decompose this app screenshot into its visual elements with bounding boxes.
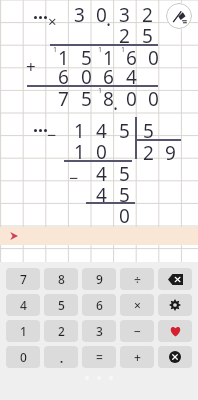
button[interactable]: Settings [158,294,192,316]
button[interactable]: 5 [44,294,78,316]
staticText: 1 [121,45,126,55]
button[interactable]: 3 [82,320,116,342]
staticText: 5 [119,161,130,184]
staticText: 5 [142,23,153,46]
button[interactable]: 4 [6,294,40,316]
staticText: 3 [119,2,130,25]
button[interactable]: . [44,346,78,368]
staticText: 7 [20,271,27,287]
button[interactable]: 8 [44,268,78,290]
button[interactable]: ÷ [120,268,154,290]
button[interactable]: 9 [82,268,116,290]
button[interactable]: More options [28,9,52,25]
staticText: 0 [96,139,107,162]
button[interactable]: 2 [44,320,78,342]
staticText: 6 [96,297,103,313]
staticText: 3 [74,2,85,25]
button[interactable]: Favorite [158,320,192,342]
staticText: × [48,11,57,31]
staticText: 4 [126,64,137,87]
button[interactable]: More options [28,122,52,138]
staticText: 0 [148,45,159,68]
staticText: 9 [96,271,103,287]
staticText: 1 [53,45,58,55]
staticText: . [59,347,64,367]
button[interactable] [0,227,198,245]
staticText: 6 [103,64,114,87]
staticText: 9 [165,140,176,163]
staticText: 6 [126,45,137,68]
staticText: 0 [119,203,130,226]
staticText: 1 [103,45,114,68]
staticText: 5 [81,45,92,68]
staticText: 8 [103,86,114,109]
staticText: 2 [143,140,154,163]
staticText: 3 [96,323,103,339]
staticText: ÷ [134,271,141,287]
staticText: 5 [143,118,154,141]
staticText: 0 [20,349,27,365]
button[interactable]: Backspace [158,268,192,290]
button[interactable]: 6 [82,294,116,316]
staticText: 2 [119,23,130,46]
staticText: 1 [74,139,85,162]
staticText: . [113,90,119,116]
staticText: 4 [20,297,27,313]
staticText: 1 [58,45,69,68]
button[interactable]: Clear all [166,3,192,29]
staticText: 4 [96,118,107,141]
staticText: 2 [58,323,65,339]
staticText: = [96,349,103,365]
staticText: 1 [98,45,103,55]
staticText: − [134,323,141,339]
staticText: 2 [142,2,153,25]
staticText: 5 [119,118,130,141]
button[interactable]: Close [158,346,192,368]
staticText: 1 [20,323,27,339]
staticText: 0 [148,86,159,109]
staticText: − [47,124,57,146]
staticText: 1 [74,118,85,141]
button[interactable]: 1 [6,320,40,342]
staticText: 1 [98,86,103,96]
staticText: 5 [81,86,92,109]
staticText: 6 [58,64,69,87]
button[interactable]: × [120,294,154,316]
staticText: + [134,349,141,365]
staticText: 5 [58,297,65,313]
staticText: 5 [119,182,130,205]
button[interactable]: 0 [6,346,40,368]
button[interactable]: − [120,320,154,342]
staticText: 7 [58,86,69,109]
staticText: + [26,55,36,78]
staticText: 4 [96,161,107,184]
staticText: 0 [126,86,137,109]
staticText: 8 [58,271,65,287]
button[interactable]: 7 [6,268,40,290]
staticText: 4 [96,182,107,205]
button[interactable]: = [82,346,116,368]
staticText: 0 [96,2,107,25]
staticText: . [106,6,112,32]
staticText: − [69,167,79,189]
button[interactable]: + [120,346,154,368]
staticText: 0 [81,64,92,87]
staticText: × [134,297,141,313]
